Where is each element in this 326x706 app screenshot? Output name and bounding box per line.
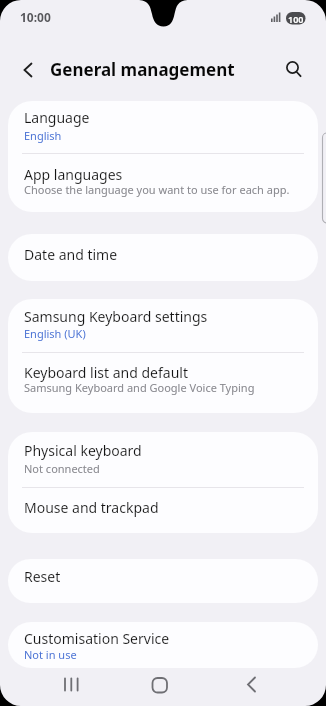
staticText: App languages	[24, 165, 123, 184]
staticText: Date and time	[24, 245, 118, 264]
staticText: Physical keyboard	[24, 441, 142, 460]
staticText: 100	[288, 13, 304, 25]
staticText: 10:00	[20, 9, 51, 25]
staticText: Customisation Service	[24, 629, 170, 648]
staticText: Choose the language you want to use for …	[24, 182, 290, 197]
staticText: Samsung Keyboard and Google Voice Typing	[24, 380, 255, 395]
staticText: English	[24, 128, 62, 143]
staticText: Reset	[24, 567, 61, 586]
button[interactable]: Mouse and trackpad	[8, 487, 318, 533]
button[interactable]: Samsung Keyboard settings	[8, 299, 318, 352]
staticText: English (UK)	[24, 326, 86, 341]
staticText: Samsung Keyboard settings	[24, 307, 208, 326]
staticText: Not in use	[24, 647, 77, 662]
button[interactable]: Keyboard list and default	[8, 352, 318, 413]
button[interactable]: App languages	[8, 154, 318, 212]
staticText: Keyboard list and default	[24, 363, 188, 382]
button[interactable]: Reset	[8, 559, 318, 603]
button[interactable]: Language	[8, 101, 318, 154]
button[interactable]: Date and time	[8, 234, 318, 281]
button[interactable]: Customisation Service	[8, 622, 318, 668]
button[interactable]: Physical keyboard	[8, 432, 318, 487]
staticText: Language	[24, 108, 90, 127]
staticText: Mouse and trackpad	[24, 498, 159, 517]
staticText: General management	[50, 58, 235, 81]
staticText: Not connected	[24, 461, 100, 476]
